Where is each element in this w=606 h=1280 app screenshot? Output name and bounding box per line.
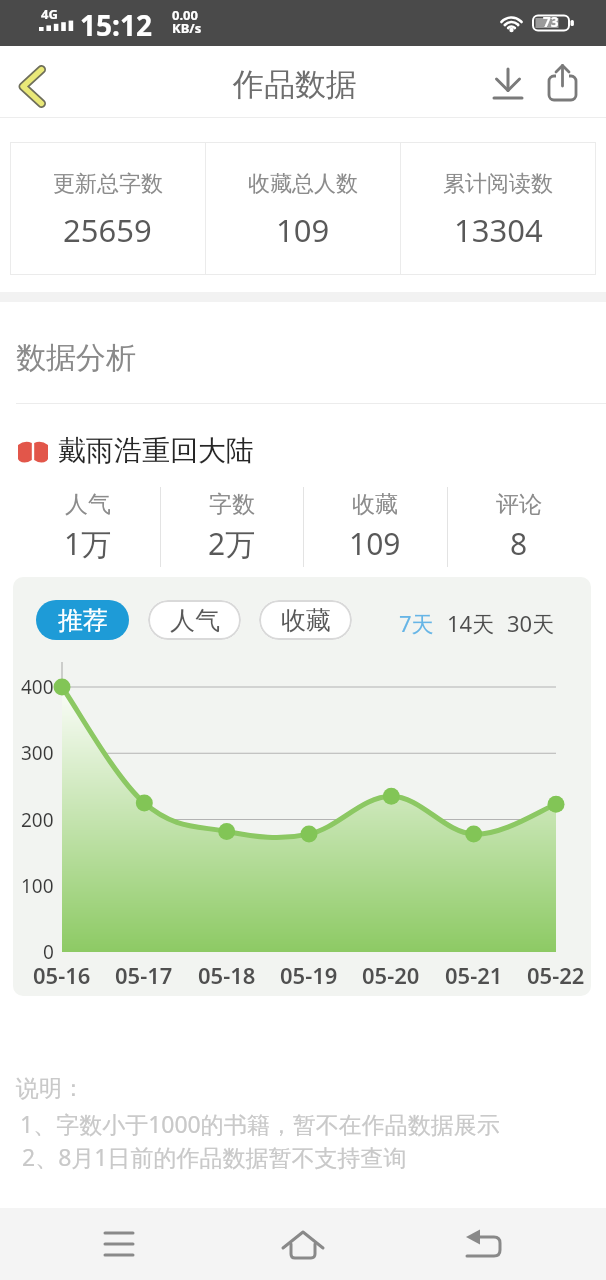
staticText: 25659 (63, 209, 152, 251)
staticText: 14天 (447, 608, 495, 638)
staticText: 300 (21, 740, 54, 766)
staticText: 7天 (399, 608, 434, 638)
button[interactable]: 戴雨浩重回大陆 (0, 425, 606, 475)
staticText: 400 (21, 674, 54, 700)
button[interactable]: 14天 (442, 608, 500, 638)
staticText: 05-16 (33, 960, 91, 990)
staticText: 收藏 (281, 605, 331, 636)
button[interactable]: 7天 (393, 608, 439, 638)
button[interactable] (8, 56, 68, 110)
staticText: 1、字数小于1000的书籍，暂不在作品数据展示 (20, 1108, 500, 1139)
staticText: 05-20 (362, 960, 420, 990)
staticText: 05-21 (445, 960, 503, 990)
staticText: 收藏 (352, 490, 398, 519)
staticText: 累计阅读数 (443, 170, 553, 198)
staticText: 说明： (16, 1074, 85, 1103)
staticText: 100 (21, 873, 54, 899)
button[interactable] (89, 1208, 149, 1268)
staticText: 4G (41, 5, 58, 23)
staticText: 05-17 (115, 960, 173, 990)
staticText: 数据分析 (16, 339, 136, 377)
button[interactable]: 人气 (148, 600, 241, 640)
staticText: 0.00 (172, 6, 198, 24)
button[interactable] (273, 1208, 333, 1268)
staticText: 13304 (454, 209, 543, 251)
button[interactable]: 30天 (502, 608, 560, 638)
staticText: 2、8月1日前的作品数据暂不支持查询 (22, 1141, 407, 1172)
staticText: 字数 (209, 490, 255, 519)
staticText: 05-22 (527, 960, 585, 990)
staticText: 收藏总人数 (248, 170, 358, 198)
staticText: 评论 (496, 490, 542, 519)
button[interactable] (456, 1208, 516, 1268)
staticText: 戴雨浩重回大陆 (58, 433, 254, 468)
button[interactable]: 推荐 (36, 600, 129, 640)
staticText: 30天 (507, 608, 555, 638)
staticText: 109 (349, 523, 401, 564)
staticText: 109 (276, 209, 330, 251)
staticText: 人气 (65, 490, 111, 519)
staticText: 作品数据 (233, 65, 357, 104)
staticText: 1万 (64, 523, 112, 564)
staticText: 15:12 (80, 6, 152, 44)
staticText: 人气 (170, 605, 220, 636)
staticText: 200 (21, 807, 54, 833)
button[interactable] (543, 61, 587, 105)
staticText: 73 (543, 13, 559, 31)
staticText: 8 (510, 523, 528, 564)
staticText: 推荐 (58, 605, 108, 636)
staticText: 05-18 (198, 960, 256, 990)
staticText: 更新总字数 (53, 170, 163, 198)
staticText: KB/s (172, 19, 202, 37)
staticText: 0 (43, 939, 54, 965)
button[interactable]: 收藏 (259, 600, 352, 640)
staticText: 2万 (208, 523, 256, 564)
staticText: 05-19 (280, 960, 338, 990)
button[interactable] (486, 61, 530, 105)
